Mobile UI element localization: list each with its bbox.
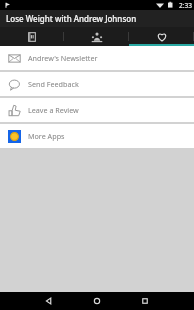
button[interactable]: Send Feedback — [0, 72, 194, 96]
button[interactable]: Journal — [0, 27, 64, 46]
button[interactable]: More Apps — [0, 124, 194, 148]
button[interactable]: Favorites — [129, 27, 194, 46]
button[interactable]: Community — [64, 27, 129, 46]
staticText: Andrew's Newsletter — [28, 53, 98, 63]
staticText: Leave a Review — [28, 105, 79, 115]
staticText: Send Feedback — [28, 79, 79, 89]
button[interactable]: Leave a Review — [0, 98, 194, 122]
button[interactable]: Recent apps — [121, 292, 169, 310]
button[interactable]: Home — [73, 292, 121, 310]
staticText: Lose Weight with Andrew Johnson — [6, 13, 137, 24]
staticText: More Apps — [28, 131, 65, 141]
button[interactable]: Back — [25, 292, 73, 310]
button[interactable]: Andrew's Newsletter — [0, 46, 194, 70]
staticText: 2:33 — [179, 1, 192, 10]
